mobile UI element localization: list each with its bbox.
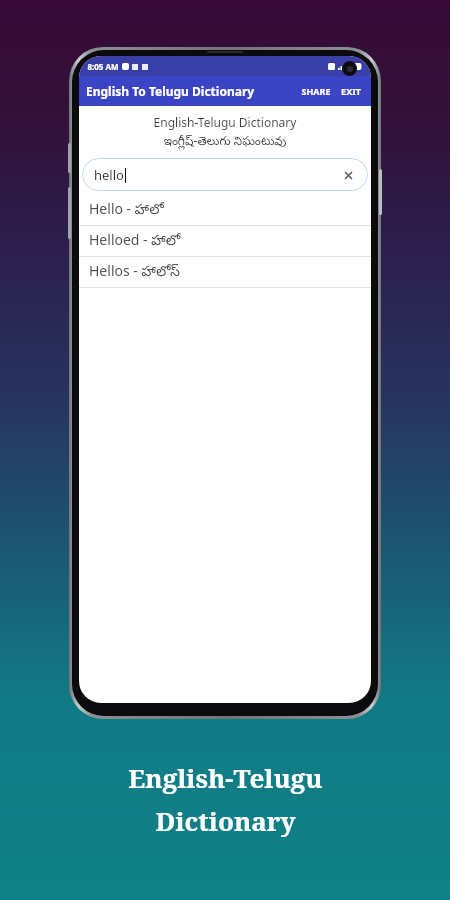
button[interactable]: Helloed - హాలో [79,226,371,256]
button[interactable]: Clear [340,167,356,183]
button[interactable]: EXIT [338,81,364,101]
button[interactable]: Hellos - హాలోస్ [79,257,371,287]
button[interactable]: hello [82,158,368,191]
button[interactable]: English To Telugu Dictionary [86,83,298,99]
staticText: Hellos - హాలోస్ [89,261,181,283]
staticText: Helloed - హాలో [89,230,181,252]
staticText: 8:05 AM [87,61,119,72]
staticText: English-Telugu Dictionary [79,114,371,130]
staticText: Dictionary [155,803,296,838]
button[interactable]: Hello - హాలో [79,195,371,225]
staticText: English To Telugu Dictionary [86,83,298,99]
staticText: Hello - హాలో [89,199,164,221]
staticText: ఇంగ్లీష్-తెలుగు నిఘంటువు [79,132,371,151]
staticText: English-Telugu [128,760,323,795]
button[interactable]: SHARE [298,81,334,101]
staticText: EXIT [341,85,361,97]
staticText: SHARE [301,85,331,97]
staticText: hello [94,166,124,184]
